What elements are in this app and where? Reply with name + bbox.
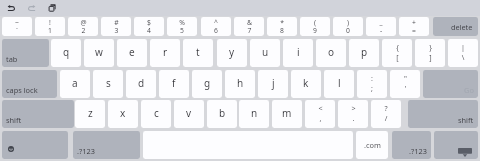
button[interactable]: @ 2 [68, 17, 98, 36]
staticText: @ 2 [80, 18, 87, 35]
staticText: p [361, 45, 368, 59]
button[interactable]: y [217, 39, 247, 67]
button[interactable]: ^ 6 [201, 17, 231, 36]
staticText: q [63, 45, 70, 59]
staticText: ~ ` [15, 18, 19, 35]
staticText: x [120, 106, 126, 120]
staticText: .com [364, 140, 381, 150]
button[interactable]: b [207, 100, 237, 128]
button[interactable]: .?123 [392, 131, 431, 159]
staticText: ^ 6 [214, 18, 218, 35]
staticText: .?123 [77, 146, 95, 156]
button[interactable]: ~ ` [2, 17, 32, 36]
button[interactable]: shift [2, 100, 74, 128]
button[interactable]: w [84, 39, 114, 67]
button[interactable]: z [75, 100, 105, 128]
staticText: g [204, 76, 211, 90]
button[interactable]: m [272, 100, 302, 128]
staticText: } ] [429, 42, 432, 62]
button[interactable]: j [258, 70, 288, 98]
button[interactable]: { [ [382, 39, 412, 67]
staticText: n [251, 106, 258, 120]
button[interactable]: tab [2, 39, 49, 67]
button[interactable]: c [141, 100, 171, 128]
button[interactable]: n [239, 100, 269, 128]
button[interactable]: g [192, 70, 222, 98]
staticText: j [272, 76, 275, 90]
button[interactable]: t [183, 39, 213, 67]
button[interactable]: l [324, 70, 354, 98]
button[interactable]: Undo [2, 0, 20, 16]
staticText: < , [318, 103, 323, 123]
button[interactable]: & 7 [234, 17, 264, 36]
staticText: c [154, 106, 159, 120]
staticText: a [72, 76, 78, 90]
button[interactable]: " ' [390, 70, 420, 98]
staticText: i [297, 45, 300, 59]
staticText: caps lock [6, 85, 38, 95]
button[interactable]: | \ [448, 39, 478, 67]
button[interactable]: + = [399, 17, 429, 36]
button[interactable]: o [316, 39, 346, 67]
button[interactable]: ! 1 [35, 17, 65, 36]
staticText: shift [458, 115, 474, 125]
staticText: shift [6, 115, 22, 125]
button[interactable]: # 3 [101, 17, 131, 36]
staticText: * 8 [280, 18, 284, 35]
button[interactable]: } ] [415, 39, 445, 67]
button[interactable]: s [93, 70, 123, 98]
button[interactable]: % 5 [167, 17, 197, 36]
staticText: > . [351, 103, 356, 123]
staticText: h [237, 76, 244, 90]
button[interactable]: ( 9 [300, 17, 330, 36]
button[interactable]: h [225, 70, 255, 98]
button[interactable]: _ - [366, 17, 396, 36]
button[interactable]: > . [338, 100, 368, 128]
staticText: r [163, 45, 168, 59]
button[interactable]: e [117, 39, 147, 67]
staticText: y [229, 45, 235, 59]
staticText: delete [451, 22, 473, 32]
button[interactable]: ) 0 [333, 17, 363, 36]
staticText: | \ [461, 42, 465, 62]
staticText: v [186, 106, 192, 120]
button[interactable]: : ; [357, 70, 387, 98]
button[interactable]: Paste [43, 0, 61, 16]
button[interactable]: ? / [371, 100, 401, 128]
button[interactable]: u [250, 39, 280, 67]
button[interactable]: caps lock [2, 70, 57, 98]
button[interactable]: delete [433, 17, 478, 36]
button[interactable]: .?123 [73, 131, 140, 159]
staticText: t [196, 45, 200, 59]
staticText: f [172, 76, 176, 90]
button[interactable]: r [150, 39, 180, 67]
button[interactable]: d [126, 70, 156, 98]
button[interactable]: q [51, 39, 81, 67]
button[interactable]: p [349, 39, 379, 67]
button[interactable]: Redo [22, 0, 40, 16]
button[interactable]: shift [408, 100, 478, 128]
staticText: w [95, 45, 103, 59]
staticText: ! 1 [48, 18, 52, 35]
button[interactable]: f [159, 70, 189, 98]
button[interactable]: Hide keyboard [434, 131, 478, 159]
button[interactable]: v [174, 100, 204, 128]
staticText: s [106, 76, 111, 90]
staticText: e [129, 45, 135, 59]
button[interactable]: $ 4 [134, 17, 164, 36]
button[interactable]: a [60, 70, 90, 98]
staticText: + = [412, 18, 416, 35]
staticText: ) 0 [346, 18, 350, 35]
button[interactable]: k [291, 70, 321, 98]
button[interactable]: < , [305, 100, 335, 128]
staticText: o [328, 45, 335, 59]
button[interactable]: Emoji [2, 131, 68, 159]
button[interactable]: .com [356, 131, 388, 159]
button[interactable]: * 8 [267, 17, 297, 36]
staticText: d [138, 76, 145, 90]
button[interactable]: x [108, 100, 138, 128]
button[interactable]: i [283, 39, 313, 67]
staticText: { [ [396, 42, 399, 62]
